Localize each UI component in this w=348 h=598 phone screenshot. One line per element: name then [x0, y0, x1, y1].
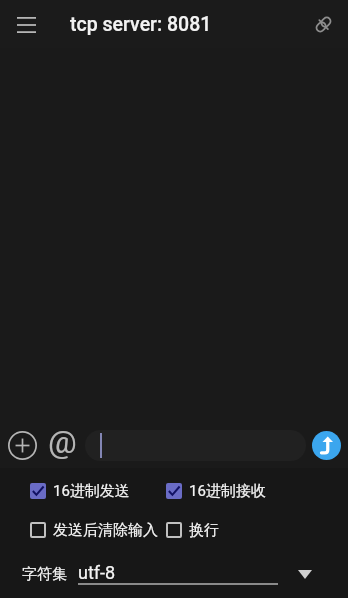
- staticText: 16进制接收: [189, 482, 266, 499]
- button[interactable]: Menu: [6, 4, 46, 44]
- staticText: 16进制发送: [53, 482, 130, 499]
- staticText: 字符集: [22, 565, 67, 584]
- button[interactable]: Link: [304, 5, 342, 43]
- button[interactable]: 字符集: [0, 558, 348, 588]
- button[interactable]: Send: [312, 431, 341, 460]
- staticText: tcp server: 8081: [70, 13, 212, 36]
- staticText: utf-8: [78, 562, 116, 583]
- staticText: 换行: [189, 521, 219, 538]
- button[interactable]: 16进制接收: [165, 482, 266, 499]
- button[interactable]: At sign: [44, 426, 82, 464]
- staticText: @: [48, 423, 77, 461]
- button[interactable]: 发送后清除输入: [29, 521, 158, 538]
- button[interactable]: Add attachment: [3, 426, 42, 465]
- staticText: 发送后清除输入: [53, 521, 158, 538]
- button[interactable]: 换行: [165, 521, 219, 538]
- button[interactable]: 16进制发送: [29, 482, 130, 499]
- button[interactable]: [85, 430, 306, 461]
